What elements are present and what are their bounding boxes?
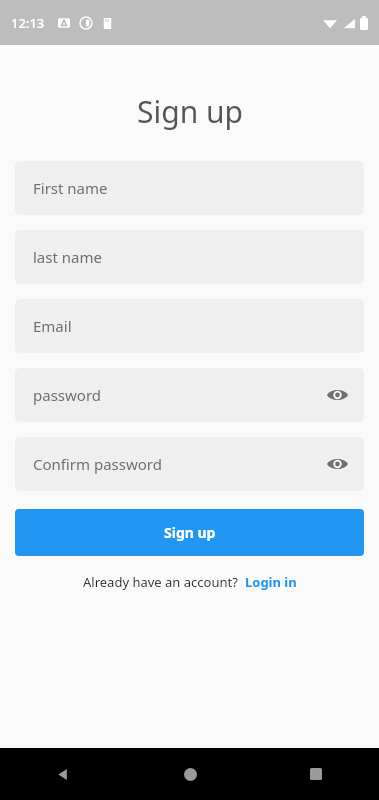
staticText: Confirm password <box>33 454 162 474</box>
staticText: password <box>33 385 101 405</box>
staticText: Login in <box>245 573 297 591</box>
button[interactable]: Home <box>127 748 253 800</box>
staticText: Already have an account? <box>83 573 238 591</box>
button[interactable]: Login in <box>245 573 297 591</box>
button[interactable]: Show password <box>318 376 356 414</box>
button[interactable]: Back <box>0 748 127 800</box>
button[interactable]: First name <box>15 161 364 215</box>
staticText: Sign up <box>164 523 216 542</box>
button[interactable]: Show password <box>318 445 356 483</box>
staticText: Email <box>33 316 72 336</box>
staticText: Sign up <box>137 91 243 132</box>
button[interactable]: Recent apps <box>253 748 379 800</box>
button[interactable]: Confirm password <box>15 437 364 491</box>
button[interactable]: Sign up <box>15 509 364 556</box>
button[interactable]: last name <box>15 230 364 284</box>
staticText: last name <box>33 247 102 267</box>
button[interactable]: Email <box>15 299 364 353</box>
staticText: First name <box>33 178 108 198</box>
staticText: 12:13 <box>11 14 45 32</box>
button[interactable]: password <box>15 368 364 422</box>
